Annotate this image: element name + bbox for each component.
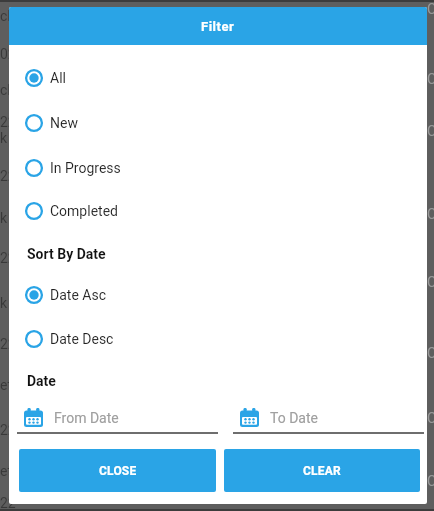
staticText: Date Desc: [50, 331, 114, 347]
staticText: All: [50, 70, 66, 86]
staticText: To Date: [270, 410, 318, 426]
button[interactable]: From Date: [17, 403, 218, 434]
staticText: From Date: [54, 410, 119, 426]
staticText: 02: [0, 46, 16, 62]
staticText: C: [427, 345, 434, 361]
button[interactable]: CLEAR: [224, 449, 420, 492]
staticText: C: [427, 274, 434, 290]
staticText: 22: [0, 495, 16, 511]
button[interactable]: Date Desc: [25, 325, 114, 353]
staticText: k: [0, 210, 8, 226]
staticText: 22: [0, 336, 16, 352]
button[interactable]: Completed: [25, 197, 118, 225]
staticText: C: [427, 410, 434, 426]
staticText: C: [427, 123, 434, 139]
staticText: Completed: [50, 203, 118, 219]
staticText: k: [0, 130, 8, 146]
staticText: cl: [0, 82, 11, 98]
button[interactable]: All: [25, 64, 66, 92]
button[interactable]: New: [25, 109, 78, 137]
button[interactable]: CLOSE: [19, 449, 216, 492]
staticText: ett: [0, 377, 17, 393]
button[interactable]: Date Asc: [25, 281, 106, 309]
button[interactable]: To Date: [233, 403, 424, 434]
staticText: 22: [0, 168, 16, 184]
staticText: CLOSE: [99, 464, 137, 478]
staticText: CLEAR: [303, 464, 341, 478]
staticText: k: [0, 295, 8, 311]
staticText: C: [427, 206, 434, 222]
staticText: Sort By Date: [27, 246, 106, 262]
staticText: ett: [0, 463, 17, 479]
button[interactable]: In Progress: [25, 154, 121, 182]
staticText: C: [427, 473, 434, 489]
staticText: cl: [0, 8, 11, 24]
staticText: Date: [27, 373, 56, 389]
staticText: Filter: [201, 19, 235, 34]
staticText: In Progress: [50, 160, 121, 176]
staticText: 22: [0, 422, 16, 438]
staticText: 22: [0, 250, 16, 266]
staticText: C: [427, 71, 434, 87]
staticText: Date Asc: [50, 287, 106, 303]
staticText: C: [427, 1, 434, 17]
staticText: New: [50, 115, 78, 131]
staticText: 22: [0, 114, 16, 130]
